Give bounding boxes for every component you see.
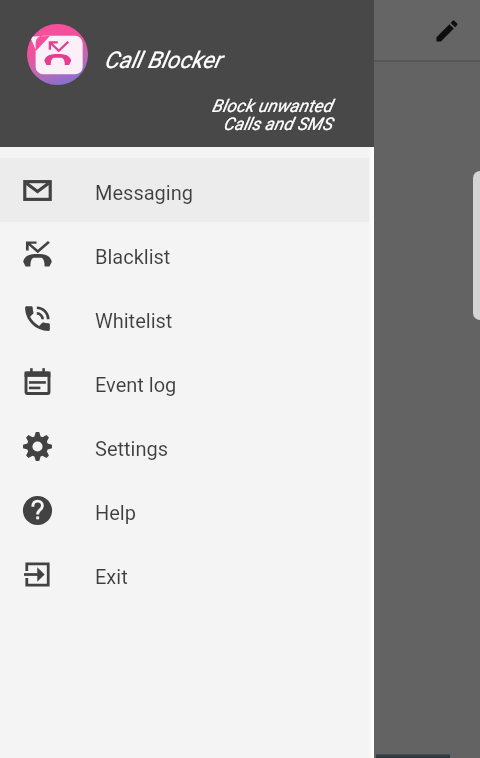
button[interactable]: Settings (0, 414, 374, 478)
staticText: Event log (95, 373, 177, 396)
button[interactable]: Messaging (0, 158, 374, 222)
button[interactable]: Event log (0, 350, 374, 414)
staticText: Settings (95, 437, 169, 460)
staticText: Whitelist (95, 309, 173, 332)
staticText: Call Blocker (104, 47, 222, 74)
staticText: Messaging (95, 181, 193, 204)
staticText: Blacklist (95, 245, 171, 268)
staticText: Help (95, 501, 136, 524)
staticText: Exit (95, 565, 128, 588)
button[interactable]: Whitelist (0, 286, 374, 350)
button[interactable]: Edit (433, 17, 461, 45)
button[interactable]: Exit (0, 542, 374, 606)
staticText: Block unwanted Calls and SMS (211, 96, 332, 134)
button[interactable]: Blacklist (0, 222, 374, 286)
button[interactable]: Help (0, 478, 374, 542)
